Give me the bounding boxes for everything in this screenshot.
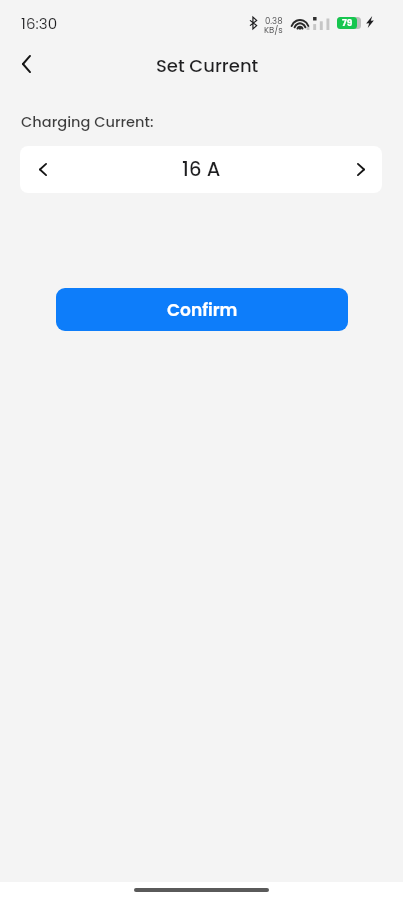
staticText: 16 A: [182, 156, 221, 183]
staticText: Set Current: [156, 53, 259, 78]
staticText: 79: [342, 17, 353, 29]
button[interactable]: Confirm: [56, 288, 348, 331]
staticText: 0.38: [265, 15, 283, 27]
button[interactable]: Increase current: [339, 146, 382, 193]
button[interactable]: Decrease current: [20, 146, 66, 193]
staticText: Charging Current:: [21, 112, 154, 132]
button[interactable]: Back: [8, 46, 44, 82]
staticText: KB/s: [264, 24, 283, 36]
staticText: Confirm: [167, 298, 238, 322]
staticText: 16:30: [21, 13, 58, 34]
